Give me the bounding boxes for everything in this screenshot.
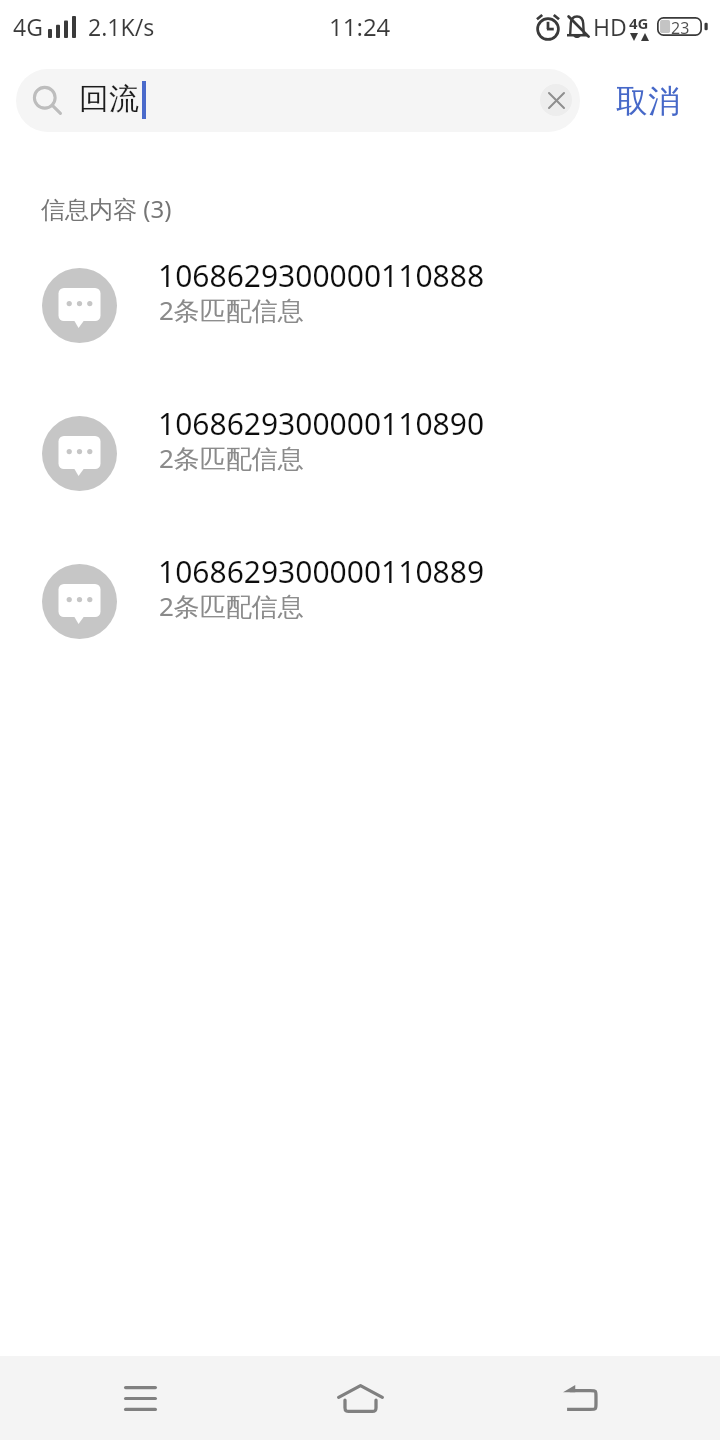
staticText: HD [593,11,627,42]
staticText: 1068629300000110889 [158,551,485,592]
button[interactable]: Clear search [540,84,572,116]
staticText: 信息内容 (3) [41,192,172,225]
staticText: 2条匹配信息 [159,292,304,328]
button[interactable]: 回流 [16,69,580,132]
staticText: 11:24 [329,10,391,43]
button[interactable]: 1068629300000110889 [0,524,720,672]
staticText: 4G [13,11,43,42]
staticText: 4G [629,13,649,33]
staticText: 回流 [79,80,139,118]
button[interactable]: Recent apps [60,1356,221,1440]
staticText: 1068629300000110890 [158,403,485,444]
button[interactable]: 取消 [616,69,686,132]
button[interactable]: Back [499,1356,660,1440]
button[interactable]: 1068629300000110888 [0,228,720,376]
button[interactable]: 1068629300000110890 [0,376,720,524]
staticText: 2条匹配信息 [159,440,304,476]
staticText: 2条匹配信息 [159,588,304,624]
staticText: 2.1K/s [88,11,155,42]
staticText: 1068629300000110888 [158,255,485,296]
staticText: 23 [671,17,690,36]
button[interactable]: Home [280,1356,441,1440]
